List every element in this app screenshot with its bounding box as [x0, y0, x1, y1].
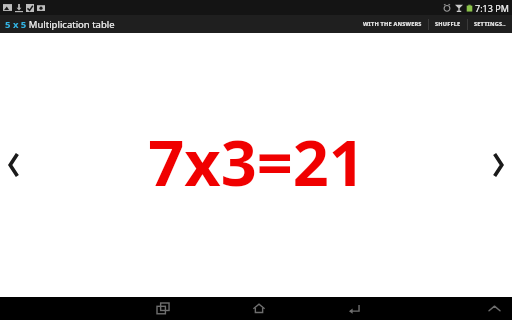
button[interactable]: WITH THE ANSWERS: [357, 15, 428, 33]
button[interactable]: Show notifications: [482, 297, 506, 320]
button[interactable]: SETTINGS..: [468, 15, 512, 33]
staticText: 7x3=21: [148, 119, 365, 205]
button[interactable]: SHUFFLE: [429, 15, 467, 33]
staticText: SETTINGS..: [474, 20, 506, 28]
staticText: SHUFFLE: [435, 20, 461, 28]
button[interactable]: Recent apps: [143, 297, 185, 320]
button[interactable]: Previous: [0, 33, 28, 297]
staticText: WITH THE ANSWERS: [363, 20, 422, 28]
button[interactable]: 5 x 5 Multiplication table: [5, 18, 115, 31]
button[interactable]: Home: [238, 297, 280, 320]
staticText: 5 x 5 Multiplication table: [5, 18, 115, 31]
button[interactable]: Next: [484, 33, 512, 297]
staticText: 7:13 PM: [475, 2, 509, 14]
button[interactable]: Back: [333, 297, 375, 320]
